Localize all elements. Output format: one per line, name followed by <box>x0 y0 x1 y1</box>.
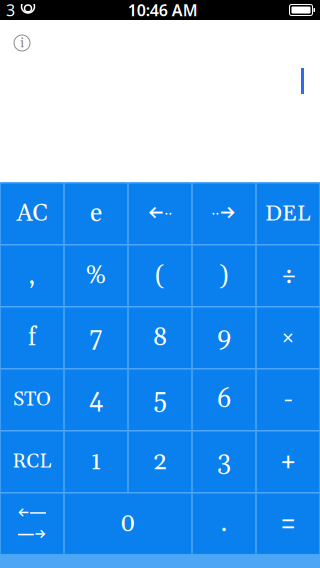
button[interactable]: Info <box>14 35 30 51</box>
staticText: ( <box>155 260 165 292</box>
staticText: 1 <box>90 446 101 478</box>
button[interactable]: ÷ <box>257 245 319 306</box>
button[interactable]: e <box>65 183 127 244</box>
staticText: AC <box>16 198 47 229</box>
staticText: + <box>280 446 296 478</box>
staticText: 2 <box>153 446 167 478</box>
staticText: 7 <box>89 322 102 354</box>
staticText: 8 <box>152 322 167 354</box>
button[interactable]: Move right <box>193 183 255 244</box>
staticText: 9 <box>217 322 231 354</box>
staticText: DEL <box>265 199 311 228</box>
staticText: 4 <box>89 384 103 416</box>
staticText: → <box>35 525 46 544</box>
staticText: e <box>90 198 102 230</box>
button[interactable]: RCL <box>1 431 63 492</box>
button[interactable]: f <box>1 307 63 368</box>
staticText: . <box>220 508 227 540</box>
staticText: ← <box>18 504 29 522</box>
staticText: , <box>28 260 35 292</box>
button[interactable]: % <box>65 245 127 306</box>
button[interactable]: , <box>1 245 63 306</box>
button[interactable]: ) <box>193 245 255 306</box>
staticText: 5 <box>153 384 166 416</box>
button[interactable]: 5 <box>129 369 191 430</box>
button[interactable]: - <box>257 369 319 430</box>
staticText: - <box>283 384 292 416</box>
staticText: STO <box>13 387 51 412</box>
staticText: f <box>28 322 36 354</box>
button[interactable]: 9 <box>193 307 255 368</box>
button[interactable]: DEL <box>257 183 319 244</box>
button[interactable]: + <box>257 431 319 492</box>
button[interactable]: 7 <box>65 307 127 368</box>
button[interactable]: = <box>257 493 319 554</box>
staticText: 3 <box>217 446 231 478</box>
button[interactable]: Swap <box>1 493 63 554</box>
button[interactable]: 1 <box>65 431 127 492</box>
button[interactable]: 4 <box>65 369 127 430</box>
staticText: ← <box>148 201 163 226</box>
staticText: = <box>280 508 296 540</box>
button[interactable]: 2 <box>129 431 191 492</box>
button[interactable]: 6 <box>193 369 255 430</box>
button[interactable]: 8 <box>129 307 191 368</box>
staticText: 10:46 AM <box>128 0 198 21</box>
staticText: RCL <box>12 449 51 474</box>
staticText: 0 <box>120 508 136 540</box>
button[interactable]: 0 <box>65 493 191 554</box>
staticText: 3 <box>6 0 15 21</box>
staticText: × <box>281 325 294 350</box>
staticText: i <box>20 34 24 52</box>
button[interactable]: STO <box>1 369 63 430</box>
button[interactable]: × <box>257 307 319 368</box>
button[interactable]: AC <box>1 183 63 244</box>
button[interactable]: . <box>193 493 255 554</box>
staticText: ) <box>219 260 229 292</box>
staticText: % <box>85 260 106 292</box>
button[interactable]: ( <box>129 245 191 306</box>
staticText: 6 <box>217 384 231 416</box>
button[interactable]: Move left <box>129 183 191 244</box>
staticText: → <box>220 201 235 226</box>
staticText: ÷ <box>280 260 296 292</box>
button[interactable]: 3 <box>193 431 255 492</box>
